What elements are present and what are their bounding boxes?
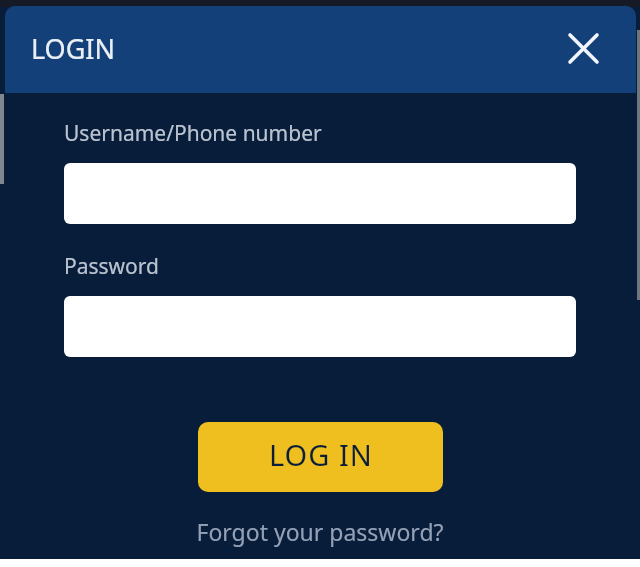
staticText: Password bbox=[64, 252, 159, 281]
staticText: LOGIN bbox=[31, 30, 116, 67]
staticText: LOG IN bbox=[269, 435, 373, 474]
button[interactable]: LOG IN bbox=[198, 422, 443, 492]
staticText: Username/Phone number bbox=[64, 119, 322, 148]
button[interactable] bbox=[553, 18, 613, 78]
button[interactable]: Forgot your password? bbox=[0, 513, 640, 549]
staticText: Forgot your password? bbox=[196, 516, 444, 547]
button[interactable] bbox=[64, 296, 576, 357]
button[interactable] bbox=[64, 163, 576, 224]
